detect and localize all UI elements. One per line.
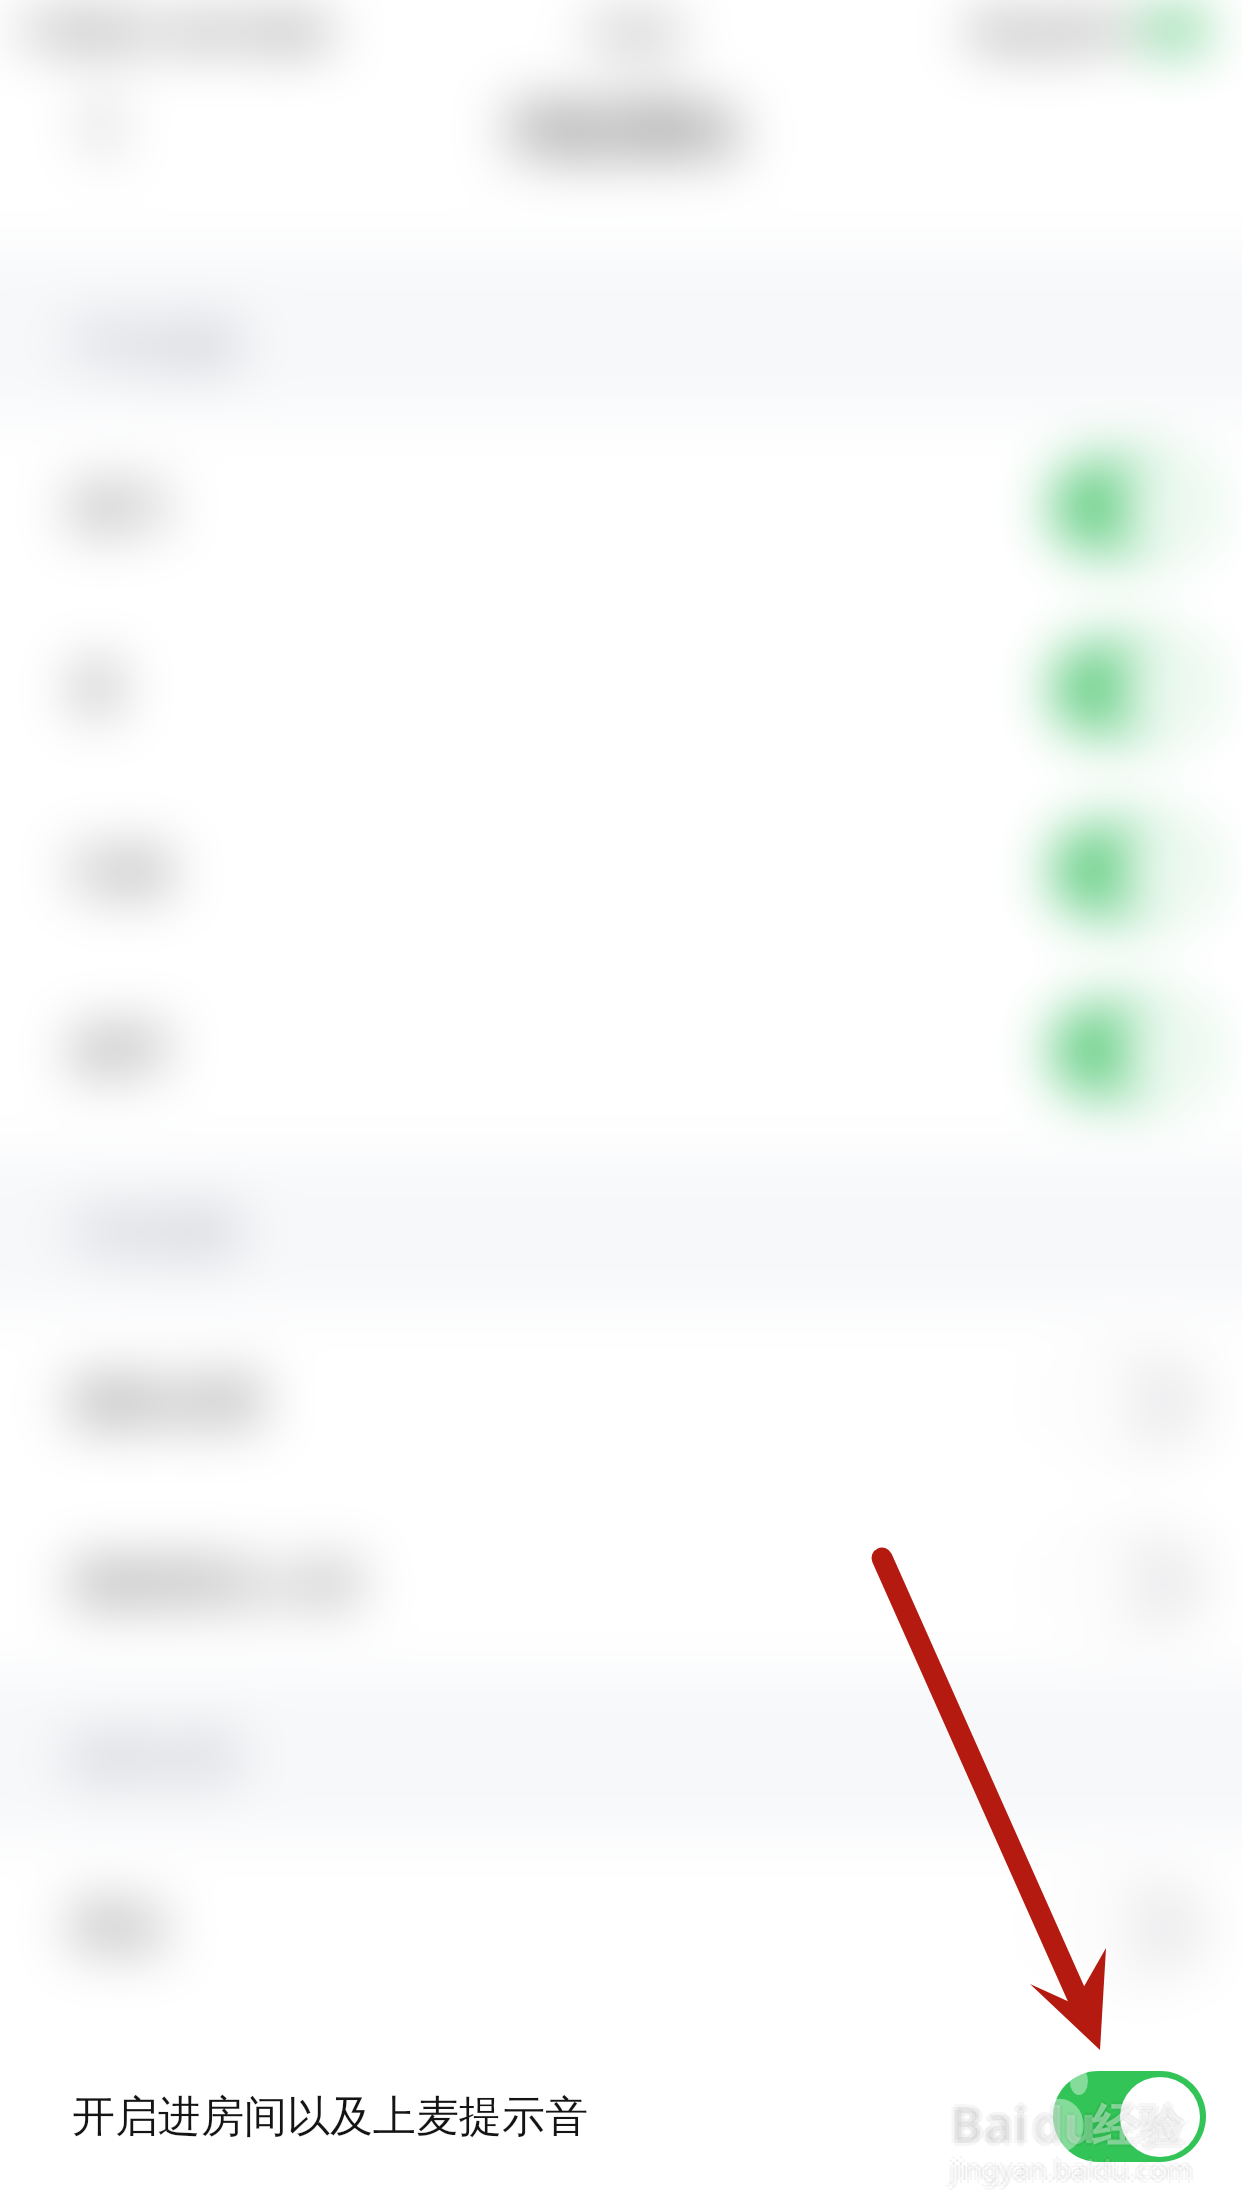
button[interactable]: 黑名 (0, 1837, 1242, 2018)
staticText: 麦序 (72, 1021, 168, 1081)
staticText: jingyan.baidu.com (953, 2150, 1196, 2188)
staticText: 声音提醒 (72, 319, 240, 372)
button[interactable]: 隐私设置 (0, 1311, 1242, 1492)
button[interactable]: Switch on (1053, 2071, 1206, 2162)
staticText: jingyan.baidu.com (950, 2153, 1193, 2191)
staticText: HD (972, 9, 1020, 53)
staticText: 经验 (1089, 2098, 1181, 2156)
staticText: 消息提醒 (72, 1206, 240, 1259)
staticText: jingyan.baidu.com (950, 2150, 1193, 2188)
staticText: 提示 (72, 477, 168, 537)
staticText: 经验 (1095, 2098, 1187, 2156)
button[interactable]: 麦序 (0, 960, 1242, 1141)
staticText: Bai (950, 2090, 1029, 2158)
button[interactable]: 震 (0, 598, 1242, 779)
staticText: Bai (947, 2090, 1026, 2158)
staticText: Bai (950, 2093, 1029, 2161)
staticText: jingyan.baidu.com (947, 2150, 1190, 2188)
staticText: du (1032, 2090, 1097, 2158)
button[interactable]: Switch off (1053, 1537, 1206, 1628)
staticText: 经验 (1092, 2098, 1184, 2156)
button[interactable]: 礼物 (0, 780, 1242, 961)
staticText: 隐私设置 (72, 1372, 264, 1432)
staticText: du (1035, 2090, 1100, 2158)
staticText: du (1032, 2093, 1097, 2161)
staticText: 礼物 (72, 841, 168, 901)
staticText: 经验 (1092, 2095, 1184, 2153)
staticText: 黑名 (72, 1898, 168, 1958)
staticText: du (1032, 2087, 1097, 2155)
button[interactable]: 提示 (0, 416, 1242, 597)
button[interactable]: 开启进房间以及上麦提示音 (0, 2026, 1242, 2207)
staticText: du (1029, 2090, 1094, 2158)
staticText: 消息通知 (505, 95, 737, 168)
staticText: 震 (72, 659, 120, 719)
button[interactable]: Switch off (1053, 1882, 1206, 1973)
staticText: Bai (950, 2087, 1029, 2155)
staticText: Bai (953, 2090, 1032, 2158)
staticText: jingyan.baidu.com (950, 2147, 1193, 2185)
button[interactable]: Switch on (1053, 461, 1206, 552)
button[interactable]: Switch on (1053, 825, 1206, 916)
button[interactable]: Back (40, 64, 164, 188)
button[interactable]: Switch on (1053, 643, 1206, 734)
staticText: 经验 (1092, 2101, 1184, 2159)
button[interactable]: Switch off (1053, 1356, 1206, 1447)
staticText: 接收陌生人的 (72, 1553, 360, 1613)
button[interactable]: Switch on (1053, 1005, 1206, 1096)
staticText: 开启进房间以及上麦提示音 (72, 2090, 588, 2144)
button[interactable]: 接收陌生人的 (0, 1492, 1242, 1673)
staticText: 中国移动 (18, 9, 162, 54)
staticText: WLAN (238, 11, 329, 52)
staticText: 14:22 (586, 7, 679, 56)
